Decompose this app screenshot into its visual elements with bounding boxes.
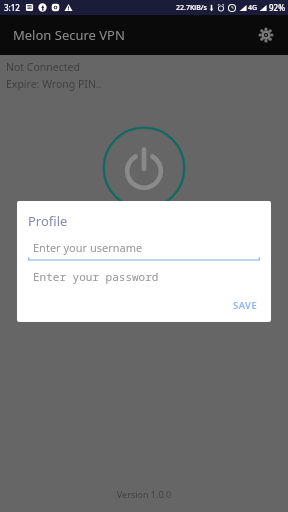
- button[interactable]: Enter your password: [28, 268, 260, 288]
- staticText: Not Connected: [6, 60, 80, 74]
- staticText: SAVE: [233, 299, 258, 312]
- staticText: Melon Secure VPN: [13, 26, 125, 44]
- button[interactable]: SAVE: [226, 295, 265, 316]
- staticText: 92%: [269, 2, 285, 13]
- staticText: 22.7KiB/s: [176, 3, 207, 13]
- staticText: Enter your username: [33, 240, 143, 255]
- staticText: 3:12: [4, 2, 20, 13]
- staticText: Expire: Wrong PIN..: [6, 77, 102, 91]
- staticText: Version 1.0.0: [0, 488, 288, 500]
- button[interactable]: Settings: [253, 22, 279, 48]
- button[interactable]: Enter your username: [28, 239, 260, 261]
- staticText: Profile: [28, 212, 68, 230]
- button[interactable]: Connect VPN: [102, 126, 186, 210]
- staticText: Enter your password: [33, 269, 159, 284]
- staticText: 4G: [248, 3, 258, 13]
